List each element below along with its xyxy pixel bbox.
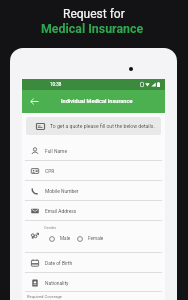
staticText: Male	[60, 236, 71, 242]
button[interactable]: Back	[26, 93, 43, 110]
staticText: CPR	[45, 168, 55, 174]
staticText: Email Address	[45, 208, 77, 214]
button[interactable]: Date of Birth	[22, 253, 165, 273]
staticText: Required Coverage	[27, 294, 63, 299]
button[interactable]: To get a quote please fill out the below…	[26, 117, 161, 135]
staticText: Full Name	[45, 148, 67, 154]
button[interactable]: Full Name	[22, 141, 165, 161]
staticText: Mobile Number	[45, 188, 79, 194]
staticText: Request for	[63, 7, 125, 21]
staticText: To get a quote please fill out the below…	[50, 123, 155, 129]
staticText: Gender	[44, 225, 57, 230]
staticText: Nationality	[45, 280, 69, 286]
button[interactable]: Gender	[22, 221, 165, 253]
staticText: Female	[88, 236, 104, 242]
button[interactable]: Mobile Number	[22, 181, 165, 201]
staticText: Date of Birth	[45, 260, 73, 266]
staticText: 10:38	[50, 82, 62, 87]
button[interactable]: Nationality	[22, 273, 165, 292]
button[interactable]: CPR	[22, 161, 165, 181]
button[interactable]: Email Address	[22, 201, 165, 221]
staticText: Individual Medical Insurance	[61, 98, 133, 105]
staticText: Medical Insurance	[41, 21, 144, 36]
